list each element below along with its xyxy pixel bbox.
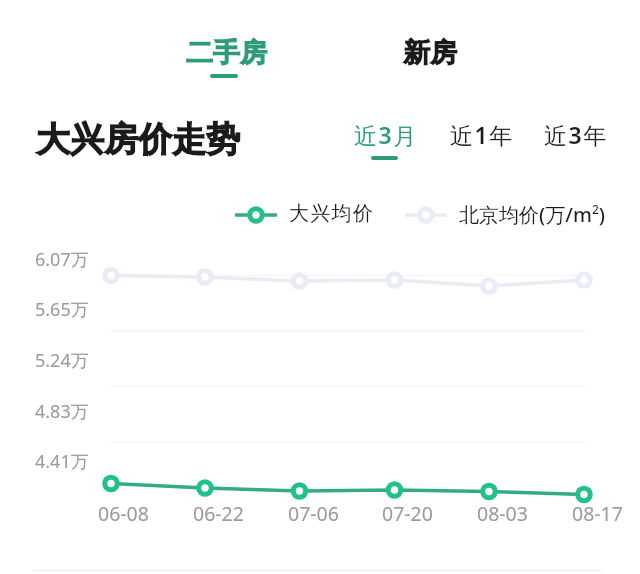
staticText: 二手房 bbox=[186, 36, 267, 70]
staticText: 近1年 bbox=[450, 119, 514, 150]
button[interactable]: 大兴均价 bbox=[289, 201, 375, 226]
staticText: 4.83万 bbox=[35, 399, 89, 424]
staticText: 北京均价(万/m2) bbox=[459, 201, 605, 228]
staticText: 5.24万 bbox=[35, 348, 89, 373]
button[interactable]: 近3月 bbox=[354, 119, 418, 160]
button[interactable]: 新房 bbox=[403, 36, 457, 70]
staticText: 5.65万 bbox=[35, 297, 89, 322]
staticText: 4.41万 bbox=[35, 449, 89, 474]
staticText: 06-08 bbox=[98, 500, 149, 527]
staticText: 新房 bbox=[403, 36, 457, 70]
button[interactable]: 北京均价(万/m2) bbox=[459, 201, 605, 228]
staticText: 07-20 bbox=[382, 500, 433, 527]
staticText: 近3月 bbox=[354, 119, 418, 150]
staticText: 近3年 bbox=[544, 119, 608, 150]
staticText: 08-17 bbox=[572, 500, 623, 527]
staticText: 6.07万 bbox=[35, 247, 89, 272]
staticText: 08-03 bbox=[477, 500, 528, 527]
staticText: 07-06 bbox=[288, 500, 339, 527]
button[interactable]: 近1年 bbox=[450, 119, 514, 150]
staticText: 大兴房价走势 bbox=[36, 118, 240, 161]
button[interactable]: 二手房 bbox=[186, 36, 267, 78]
staticText: 06-22 bbox=[193, 500, 244, 527]
staticText: 大兴均价 bbox=[289, 201, 375, 226]
button[interactable]: 近3年 bbox=[544, 119, 608, 150]
